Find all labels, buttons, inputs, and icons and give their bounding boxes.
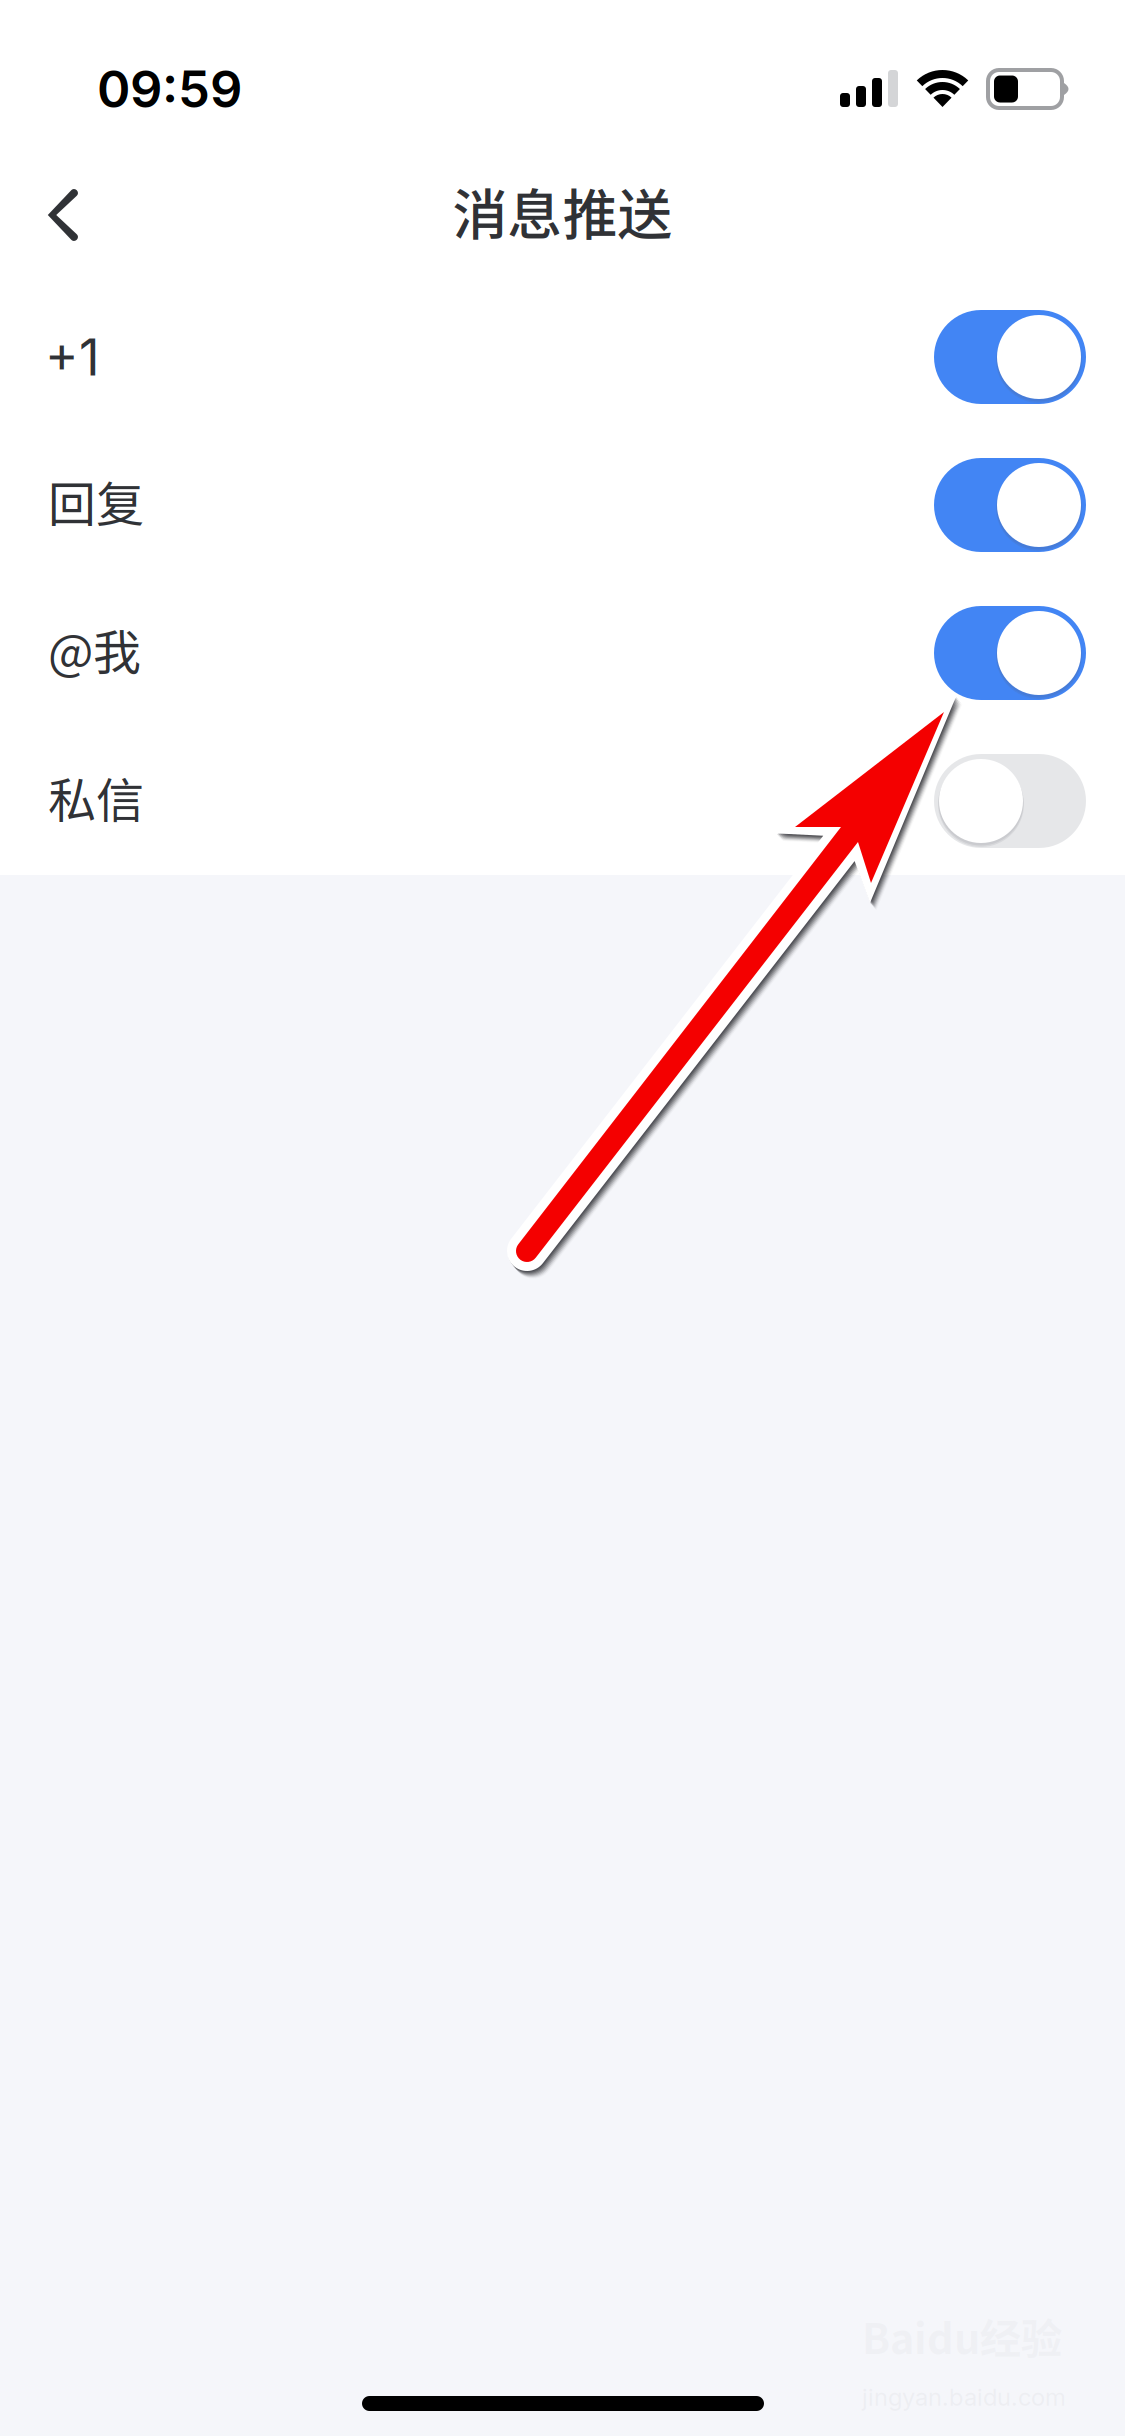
staticText: 私信: [48, 762, 144, 832]
button[interactable]: Back: [3, 155, 123, 275]
button[interactable]: +1: [0, 283, 1125, 431]
staticText: 消息推送: [452, 171, 672, 251]
staticText: 09:59: [97, 58, 242, 120]
button[interactable]: 私信: [0, 727, 1125, 875]
staticText: 回复: [48, 466, 144, 536]
staticText: +1: [45, 326, 100, 388]
button[interactable]: 回复: [0, 431, 1125, 579]
button[interactable]: @我: [0, 579, 1125, 727]
staticText: @我: [48, 614, 141, 684]
